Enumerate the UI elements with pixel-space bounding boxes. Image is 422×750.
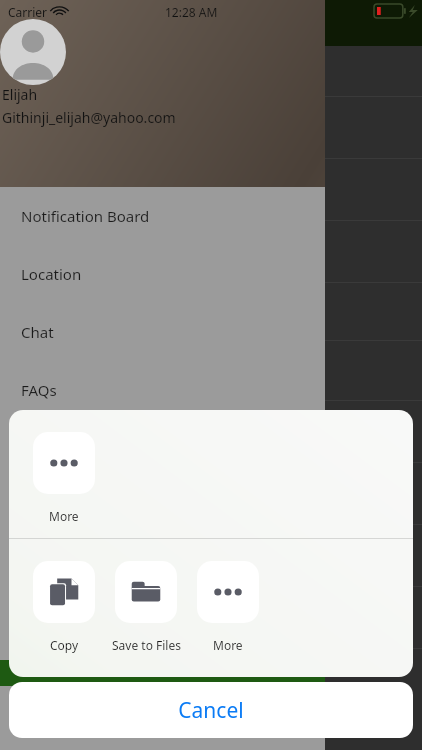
button[interactable]: More	[188, 561, 268, 653]
staticText: Elijah	[2, 85, 38, 104]
other: More	[197, 561, 259, 623]
staticText: FAQs	[21, 380, 57, 400]
staticText: More	[213, 637, 243, 653]
button[interactable]: Location	[0, 245, 325, 303]
staticText: 12:28 AM	[165, 4, 218, 20]
other: Copy	[33, 561, 95, 623]
button[interactable]: Copy	[24, 561, 104, 653]
staticText: Notification Board	[21, 206, 150, 226]
button[interactable]: Cancel	[9, 682, 413, 738]
button[interactable]: Chat	[0, 303, 325, 361]
staticText: Cancel	[178, 696, 244, 725]
staticText: Copy	[50, 637, 79, 653]
other: More	[33, 432, 95, 494]
button[interactable]: Notification Board	[0, 187, 325, 245]
staticText: Chat	[21, 322, 54, 342]
staticText: Save to Files	[112, 637, 181, 653]
staticText: More	[49, 508, 79, 524]
button[interactable]: FAQs	[0, 361, 325, 419]
staticText: Githinji_elijah@yahoo.com	[2, 108, 176, 127]
staticText: Carrier	[8, 4, 48, 20]
staticText: Location	[21, 264, 82, 284]
button[interactable]: Save to Files	[106, 561, 186, 653]
other: Save to Files	[115, 561, 177, 623]
button[interactable]: More	[24, 432, 104, 524]
